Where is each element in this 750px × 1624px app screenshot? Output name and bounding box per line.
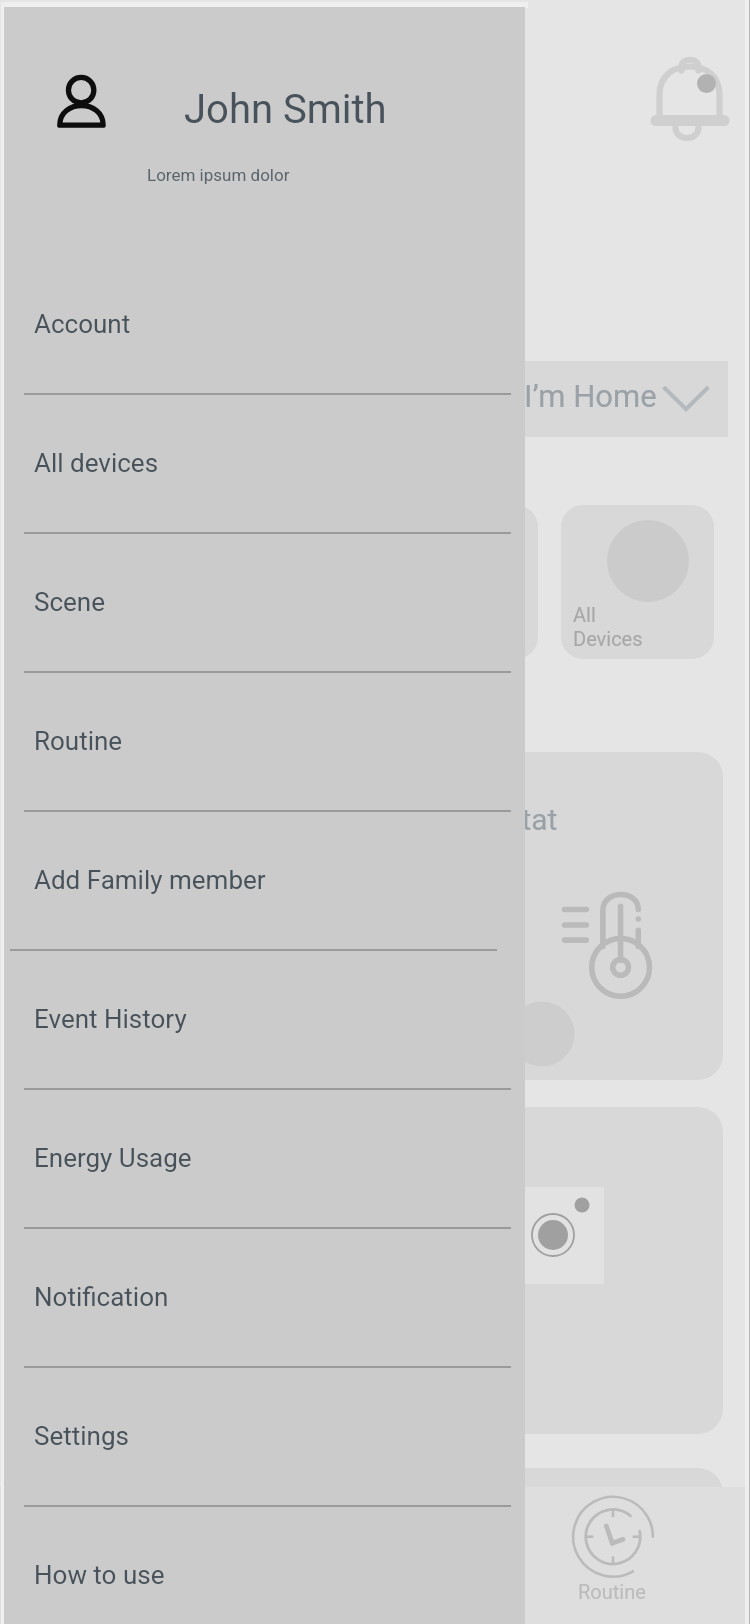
staticText: I’m Home [524,378,657,414]
button[interactable]: Add Family member [4,817,525,956]
button[interactable]: I’m Home [380,361,728,437]
staticText: John Smith [184,86,387,133]
button[interactable]: Notifications [640,45,740,145]
staticText: Event History [34,1004,187,1034]
button[interactable]: All [561,505,714,659]
button[interactable]: All devices [4,400,525,539]
button[interactable]: How to use [4,1512,525,1624]
staticText: Energy Usage [34,1143,192,1173]
staticText: Account [34,309,131,339]
button[interactable]: Event History [4,956,525,1095]
staticText: Routine [578,1580,646,1603]
button[interactable]: Account [4,261,525,400]
staticText: Scene [34,587,105,617]
staticText: All devices [34,448,159,478]
staticText: Add Family member [34,865,266,895]
button[interactable]: Routine [4,678,525,817]
staticText: How to use [34,1560,165,1590]
button[interactable]: Scene [4,539,525,678]
staticText: Notification [34,1282,169,1312]
button[interactable] [356,1107,723,1434]
staticText: Thermostat [402,802,558,837]
staticText: Lorem ipsum dolor [147,165,290,185]
button[interactable] [385,505,538,659]
button[interactable]: Notification [4,1234,525,1373]
staticText: All [573,603,596,626]
button[interactable]: Settings [4,1373,525,1512]
button[interactable]: Thermostat [356,752,723,1080]
button[interactable]: Energy Usage [4,1095,525,1234]
staticText: Routine [34,726,123,756]
staticText: Devices [573,627,643,650]
staticText: Settings [34,1421,129,1451]
button[interactable]: Routine [538,1490,690,1624]
